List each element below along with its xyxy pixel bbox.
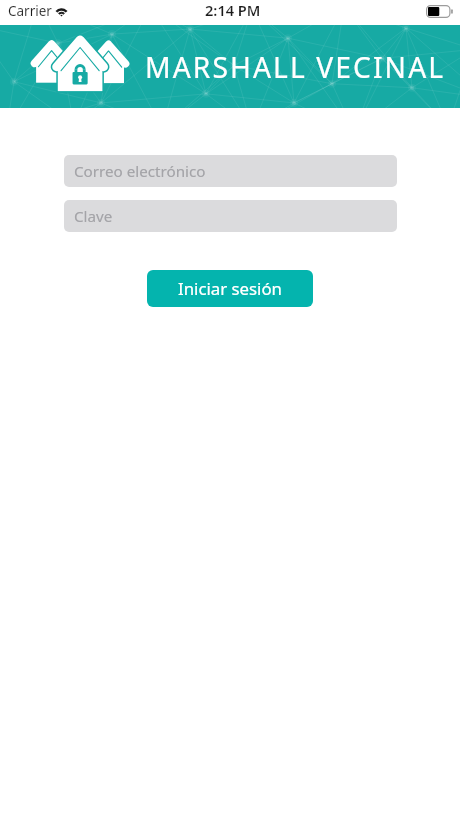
- staticText: Clave: [74, 206, 113, 227]
- staticText: Correo electrónico: [74, 161, 206, 182]
- staticText: 2:14 PM: [205, 0, 261, 20]
- button[interactable]: Clave: [64, 200, 397, 232]
- button[interactable]: Iniciar sesión: [147, 270, 313, 307]
- staticText: Carrier: [8, 2, 52, 20]
- button[interactable]: Correo electrónico: [64, 155, 397, 187]
- staticText: MARSHALL VECINAL: [145, 48, 446, 86]
- staticText: Iniciar sesión: [178, 277, 282, 300]
- other: Marshall Vecinal logo: [28, 38, 130, 94]
